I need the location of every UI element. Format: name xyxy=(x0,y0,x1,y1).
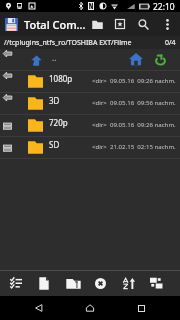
button[interactable]: Sort xyxy=(116,271,142,295)
button[interactable]: Select all xyxy=(3,271,29,295)
button[interactable]: .. xyxy=(0,49,180,71)
button[interactable]: Recents xyxy=(129,296,153,320)
staticText: Total Com... xyxy=(24,17,86,32)
staticText: .. xyxy=(52,52,57,63)
button[interactable]: Cancel xyxy=(87,271,113,295)
staticText: <dir> xyxy=(92,76,107,84)
button[interactable]: Refresh xyxy=(154,53,167,66)
button[interactable]: Home xyxy=(129,52,143,66)
button[interactable]: New folder xyxy=(60,271,86,295)
staticText: //tcplugins_ntfs_ro/TOSHIBA EXT/Filme xyxy=(4,38,165,48)
button[interactable]: SD xyxy=(0,137,180,159)
button[interactable]: Bookmarks xyxy=(110,12,130,36)
button[interactable]: Split view xyxy=(143,271,169,295)
staticText: 09.05.16 09:26 nachm. xyxy=(110,120,176,128)
button[interactable]: New file xyxy=(31,271,57,295)
staticText: 21.02.15 02:15 nachm. xyxy=(110,142,176,150)
staticText: 720p xyxy=(49,117,68,128)
button[interactable]: Open folder xyxy=(87,12,107,36)
staticText: 22:10 xyxy=(153,1,175,13)
button[interactable]: More options xyxy=(157,12,177,36)
button[interactable]: Search xyxy=(133,12,153,36)
button[interactable]: 720p xyxy=(0,115,180,137)
staticText: <dir> xyxy=(92,98,107,106)
staticText: 3D xyxy=(49,95,60,106)
button[interactable]: 1080p xyxy=(0,71,180,93)
button[interactable]: Back xyxy=(27,296,51,320)
staticText: 09.05.16 09:56 nachm. xyxy=(110,98,176,106)
button[interactable]: 3D xyxy=(0,93,180,115)
staticText: <dir> xyxy=(92,142,107,150)
staticText: 0/4 xyxy=(165,38,176,48)
staticText: SD xyxy=(49,139,60,150)
staticText: 09.05.16 09:26 nachm. xyxy=(110,76,176,84)
button[interactable]: Home xyxy=(78,296,102,320)
staticText: <dir> xyxy=(92,120,107,128)
staticText: 1080p xyxy=(49,73,73,84)
